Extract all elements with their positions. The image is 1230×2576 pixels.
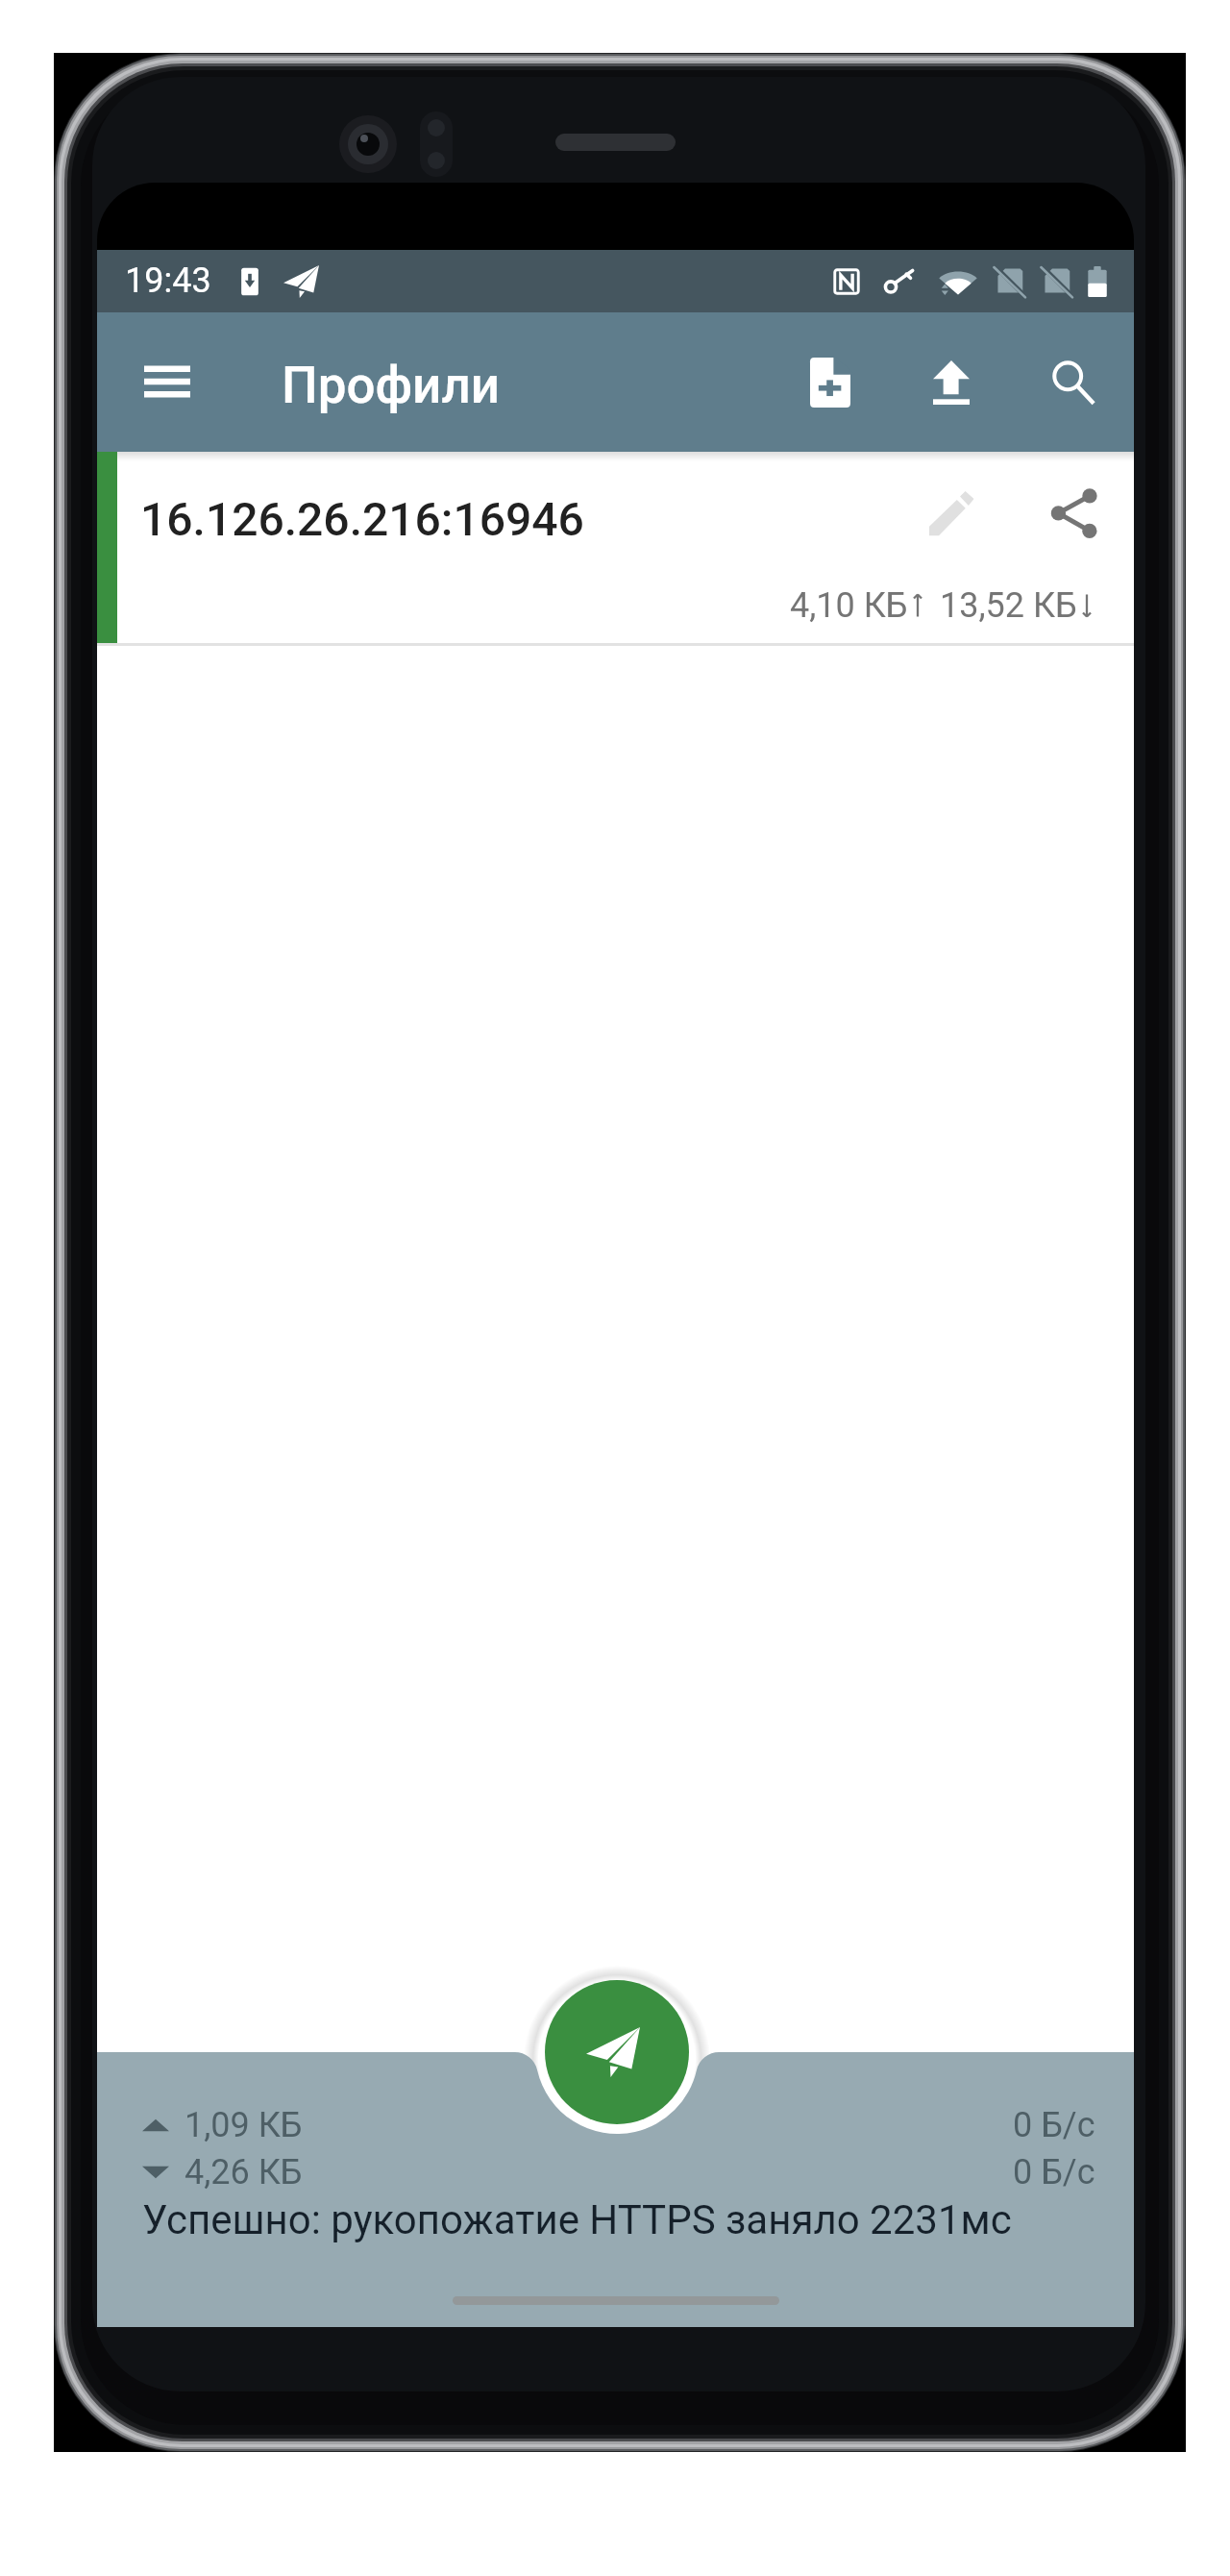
staticText: 1,09 КБ bbox=[184, 2105, 303, 2145]
staticText: Успешно: рукопожатие HTTPS заняло 2231мс bbox=[142, 2196, 1012, 2243]
staticText: 4,10 КБ bbox=[790, 585, 908, 626]
button[interactable]: Import from clipboard bbox=[903, 334, 999, 431]
staticText: 19:43 bbox=[125, 260, 211, 301]
staticText: Профили bbox=[282, 356, 500, 415]
staticText: 16.126.26.216:16946 bbox=[140, 492, 584, 546]
button[interactable]: Search bbox=[1024, 334, 1120, 431]
button[interactable]: Open navigation menu bbox=[119, 334, 215, 430]
button[interactable]: Share profile bbox=[1026, 465, 1122, 561]
button[interactable]: Add profile bbox=[782, 334, 878, 431]
staticText: 4,26 КБ bbox=[184, 2152, 303, 2192]
button[interactable]: Connect bbox=[545, 1980, 689, 2124]
staticText: 0 Б/с bbox=[1013, 2152, 1095, 2192]
button[interactable]: 16.126.26.216:16946 bbox=[97, 452, 1134, 646]
staticText: 13,52 КБ bbox=[940, 585, 1077, 626]
button[interactable]: Edit profile bbox=[903, 465, 999, 561]
staticText: 0 Б/с bbox=[1013, 2105, 1095, 2145]
